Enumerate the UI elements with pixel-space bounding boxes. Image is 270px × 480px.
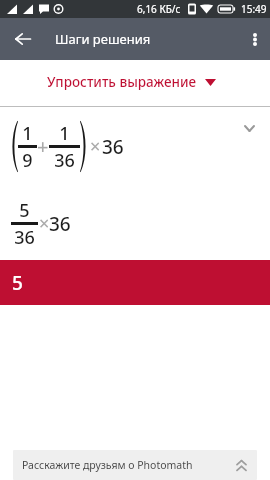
staticText: Упростить выражение [47,73,197,91]
staticText: 36 [102,134,124,160]
button[interactable]: 5 [0,202,270,245]
staticText: + [37,133,49,160]
staticText: Шаги решения [55,30,151,48]
staticText: 36 [14,225,35,245]
button[interactable]: Расскажите друзьям о Photomath [13,450,257,480]
staticText: 5 [12,270,23,296]
staticText: × [39,211,50,236]
staticText: 5 [19,198,30,218]
staticText: 9 [22,148,33,168]
button[interactable]: 1 [0,120,270,173]
button[interactable]: Back [0,18,45,60]
staticText: 1 [22,121,33,141]
staticText: 36 [54,148,75,168]
button[interactable]: 5 [0,260,270,305]
button[interactable]: Expand step [234,121,264,173]
staticText: 6,16 КБ/с [137,2,181,16]
staticText: 36 [49,211,71,237]
staticText: 1 [59,121,70,141]
button[interactable]: Упростить выражение [0,60,270,106]
button[interactable]: More options [239,18,270,60]
staticText: × [90,134,101,159]
staticText: 15:49 [241,2,267,16]
staticText: Расскажите друзьям о Photomath [22,458,193,472]
